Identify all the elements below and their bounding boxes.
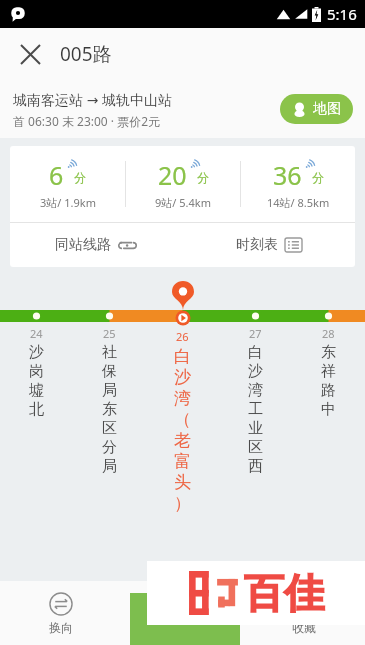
staticText: 社: [102, 343, 117, 362]
button[interactable]: 27: [219, 281, 292, 531]
staticText: ）: [174, 493, 191, 514]
button[interactable]: 同站线路: [10, 223, 182, 267]
staticText: 湾: [174, 388, 191, 409]
staticText: 东: [321, 343, 336, 362]
staticText: 北: [29, 400, 44, 419]
staticText: 分: [197, 170, 209, 185]
staticText: 26: [176, 329, 189, 344]
staticText: 分: [102, 438, 117, 457]
staticText: 区: [102, 419, 117, 438]
staticText: 城南客运站 → 城轨中山站: [13, 90, 173, 109]
staticText: 收藏: [292, 620, 316, 635]
button[interactable]: 刷新: [121, 581, 243, 645]
staticText: 祥: [321, 362, 336, 381]
staticText: 20: [158, 158, 187, 192]
button[interactable]: 地图: [280, 94, 353, 124]
button[interactable]: 收藏: [243, 581, 365, 645]
staticText: 005路: [60, 41, 112, 67]
staticText: 百佳: [244, 568, 324, 618]
staticText: 岗: [29, 362, 44, 381]
staticText: （: [174, 409, 191, 430]
staticText: 刷新: [170, 620, 194, 635]
staticText: 换向: [49, 620, 73, 635]
staticText: 9站/ 5.4km: [155, 195, 211, 210]
staticText: 工: [248, 400, 263, 419]
button[interactable]: 换向: [0, 581, 121, 645]
staticText: 局: [102, 457, 117, 476]
staticText: 3站/ 1.9km: [40, 195, 96, 210]
staticText: 中: [321, 400, 336, 419]
staticText: 湾: [248, 381, 263, 400]
staticText: 沙: [29, 343, 44, 362]
staticText: 墟: [29, 381, 44, 400]
staticText: 25: [103, 326, 116, 341]
staticText: 保: [102, 362, 117, 381]
staticText: 同站线路: [55, 236, 111, 254]
button[interactable]: 26: [146, 281, 219, 531]
staticText: 西: [248, 457, 263, 476]
staticText: 5:16: [327, 4, 357, 24]
staticText: 局: [102, 381, 117, 400]
button[interactable]: Advertisement: [147, 561, 365, 625]
button[interactable]: 28: [292, 281, 365, 531]
staticText: 沙: [248, 362, 263, 381]
staticText: 36: [273, 158, 302, 192]
staticText: 富: [174, 451, 191, 472]
staticText: 老: [174, 430, 191, 451]
staticText: 沙: [174, 367, 191, 388]
staticText: 路: [321, 381, 336, 400]
staticText: 分: [312, 170, 324, 185]
staticText: 区: [248, 438, 263, 457]
staticText: 东: [102, 400, 117, 419]
staticText: 6: [49, 158, 64, 192]
staticText: 分: [74, 170, 86, 185]
staticText: 业: [248, 419, 263, 438]
button[interactable]: 时刻表: [182, 223, 355, 267]
staticText: 白: [174, 346, 191, 367]
staticText: 时刻表: [236, 236, 278, 254]
staticText: 24: [30, 326, 43, 341]
button[interactable]: 25: [73, 281, 146, 531]
staticText: 首 06:30 末 23:00 · 票价2元: [13, 113, 161, 129]
staticText: 14站/ 8.5km: [267, 195, 330, 210]
staticText: 头: [174, 472, 191, 493]
button[interactable]: 36: [241, 158, 355, 210]
staticText: 白: [248, 343, 263, 362]
button[interactable]: 24: [0, 281, 73, 531]
staticText: 地图: [313, 100, 341, 118]
button[interactable]: 20: [126, 158, 240, 210]
staticText: 28: [322, 326, 335, 341]
staticText: 27: [249, 326, 262, 341]
button[interactable]: Close: [10, 34, 50, 74]
button[interactable]: 6: [10, 158, 125, 210]
